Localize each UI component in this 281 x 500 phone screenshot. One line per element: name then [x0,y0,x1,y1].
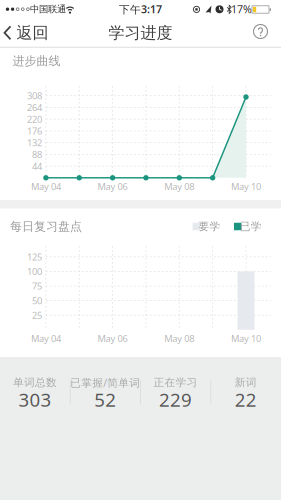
staticText: 303 [19,387,52,412]
staticText: 正在学习 [154,376,198,389]
staticText: 52 [94,387,116,412]
staticText: 176 [27,125,42,137]
staticText: 125 [27,251,42,263]
staticText: 264 [27,101,42,114]
staticText: 75 [32,280,42,292]
staticText: 已掌握/简单词 [70,375,140,390]
staticText: 88 [32,148,42,160]
staticText: May 10 [231,180,261,193]
staticText: May 06 [98,180,128,193]
button[interactable]: 帮助 [253,24,268,39]
staticText: May 08 [164,332,194,345]
staticText: 308 [27,89,42,102]
staticText: 44 [32,160,42,172]
staticText: 132 [27,136,42,149]
staticText: 新词 [235,376,257,389]
staticText: May 10 [231,332,261,345]
staticText: 单词总数 [13,376,57,389]
staticText: 要学 [198,220,220,233]
staticText: May 08 [164,180,194,193]
staticText: 100 [27,265,42,278]
staticText: 25 [32,309,42,321]
button[interactable]: 返回 [3,23,48,43]
staticText: May 04 [31,332,61,345]
staticText: 返回 [16,23,48,43]
staticText: May 06 [98,332,128,345]
staticText: 已学 [240,220,262,233]
staticText: 下午3:17 [119,2,162,16]
staticText: 17% [231,2,252,16]
staticText: 22 [235,387,257,412]
staticText: 进步曲线 [12,54,60,68]
staticText: 每日复习盘点 [10,219,82,234]
staticText: 220 [27,113,42,125]
staticText: 中国联通 [30,3,66,15]
staticText: 学习进度 [108,23,172,43]
staticText: 50 [32,294,42,307]
staticText: 229 [159,387,192,412]
staticText: May 04 [31,180,61,193]
